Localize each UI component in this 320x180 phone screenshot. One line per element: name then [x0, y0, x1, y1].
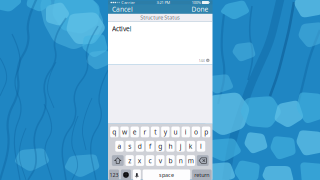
staticText: 144	[198, 58, 204, 63]
button[interactable]: o	[192, 126, 200, 137]
staticText: 3:21 PM	[156, 0, 170, 5]
staticText: p	[204, 127, 208, 136]
staticText: return	[194, 171, 209, 178]
button[interactable]	[121, 169, 131, 180]
staticText: space	[159, 171, 174, 178]
button[interactable]: v	[156, 155, 164, 166]
button[interactable]: q	[110, 126, 118, 137]
button[interactable]	[197, 155, 209, 166]
staticText: s	[128, 142, 131, 151]
button[interactable]: Cancel	[108, 5, 137, 13]
staticText: Structure Status	[140, 14, 180, 21]
staticText: c	[148, 156, 151, 165]
button[interactable]: return	[192, 169, 212, 180]
button[interactable]: j	[176, 141, 185, 152]
button[interactable]	[112, 155, 124, 166]
staticText: z	[128, 156, 131, 165]
staticText: Active	[112, 24, 130, 33]
button[interactable]: x	[136, 155, 144, 166]
staticText: m	[188, 156, 194, 165]
button[interactable]: t	[151, 126, 159, 137]
button[interactable]: m	[187, 155, 195, 166]
button[interactable]: g	[156, 141, 164, 152]
staticText: Carrier	[121, 0, 135, 5]
staticText: l	[200, 142, 202, 151]
staticText: g	[158, 142, 162, 151]
staticText: t	[154, 127, 156, 136]
button[interactable]: r	[141, 126, 149, 137]
staticText: h	[168, 142, 172, 151]
button[interactable]: z	[125, 155, 134, 166]
button[interactable]: c	[146, 155, 154, 166]
staticText: f	[149, 142, 151, 151]
button[interactable]: w	[120, 126, 129, 137]
button[interactable]: p	[202, 126, 210, 137]
staticText: Done	[191, 5, 208, 13]
button[interactable]: u	[171, 126, 180, 137]
button[interactable]: 123	[109, 169, 119, 180]
staticText: q	[112, 127, 116, 136]
staticText: 123	[109, 171, 118, 178]
button[interactable]: s	[125, 141, 134, 152]
staticText: ×	[207, 58, 209, 63]
button[interactable]: y	[161, 126, 169, 137]
button[interactable]: f	[146, 141, 154, 152]
button[interactable]: space	[143, 169, 190, 180]
staticText: o	[194, 127, 198, 136]
staticText: a	[117, 142, 121, 151]
staticText: x	[138, 156, 142, 165]
staticText: n	[179, 156, 183, 165]
button[interactable]: b	[166, 155, 175, 166]
staticText: 100%	[192, 0, 201, 5]
button[interactable]: h	[166, 141, 175, 152]
staticText: e	[133, 127, 137, 136]
staticText: w	[122, 127, 127, 136]
staticText: d	[138, 142, 142, 151]
button[interactable]: Done	[187, 5, 212, 13]
button[interactable]	[133, 169, 141, 180]
button[interactable]: n	[176, 155, 185, 166]
staticText: u	[173, 127, 177, 136]
staticText: y	[164, 127, 167, 136]
staticText: r	[143, 127, 146, 136]
button[interactable]: i	[181, 126, 190, 137]
button[interactable]: k	[187, 141, 195, 152]
staticText: k	[189, 142, 193, 151]
staticText: j	[180, 142, 182, 151]
button[interactable]: e	[130, 126, 139, 137]
button[interactable]: d	[136, 141, 144, 152]
staticText: b	[168, 156, 172, 165]
staticText: Cancel	[112, 5, 133, 13]
staticText: v	[159, 156, 162, 165]
button[interactable]: l	[197, 141, 205, 152]
button[interactable]: a	[115, 141, 124, 152]
staticText: i	[185, 127, 187, 136]
